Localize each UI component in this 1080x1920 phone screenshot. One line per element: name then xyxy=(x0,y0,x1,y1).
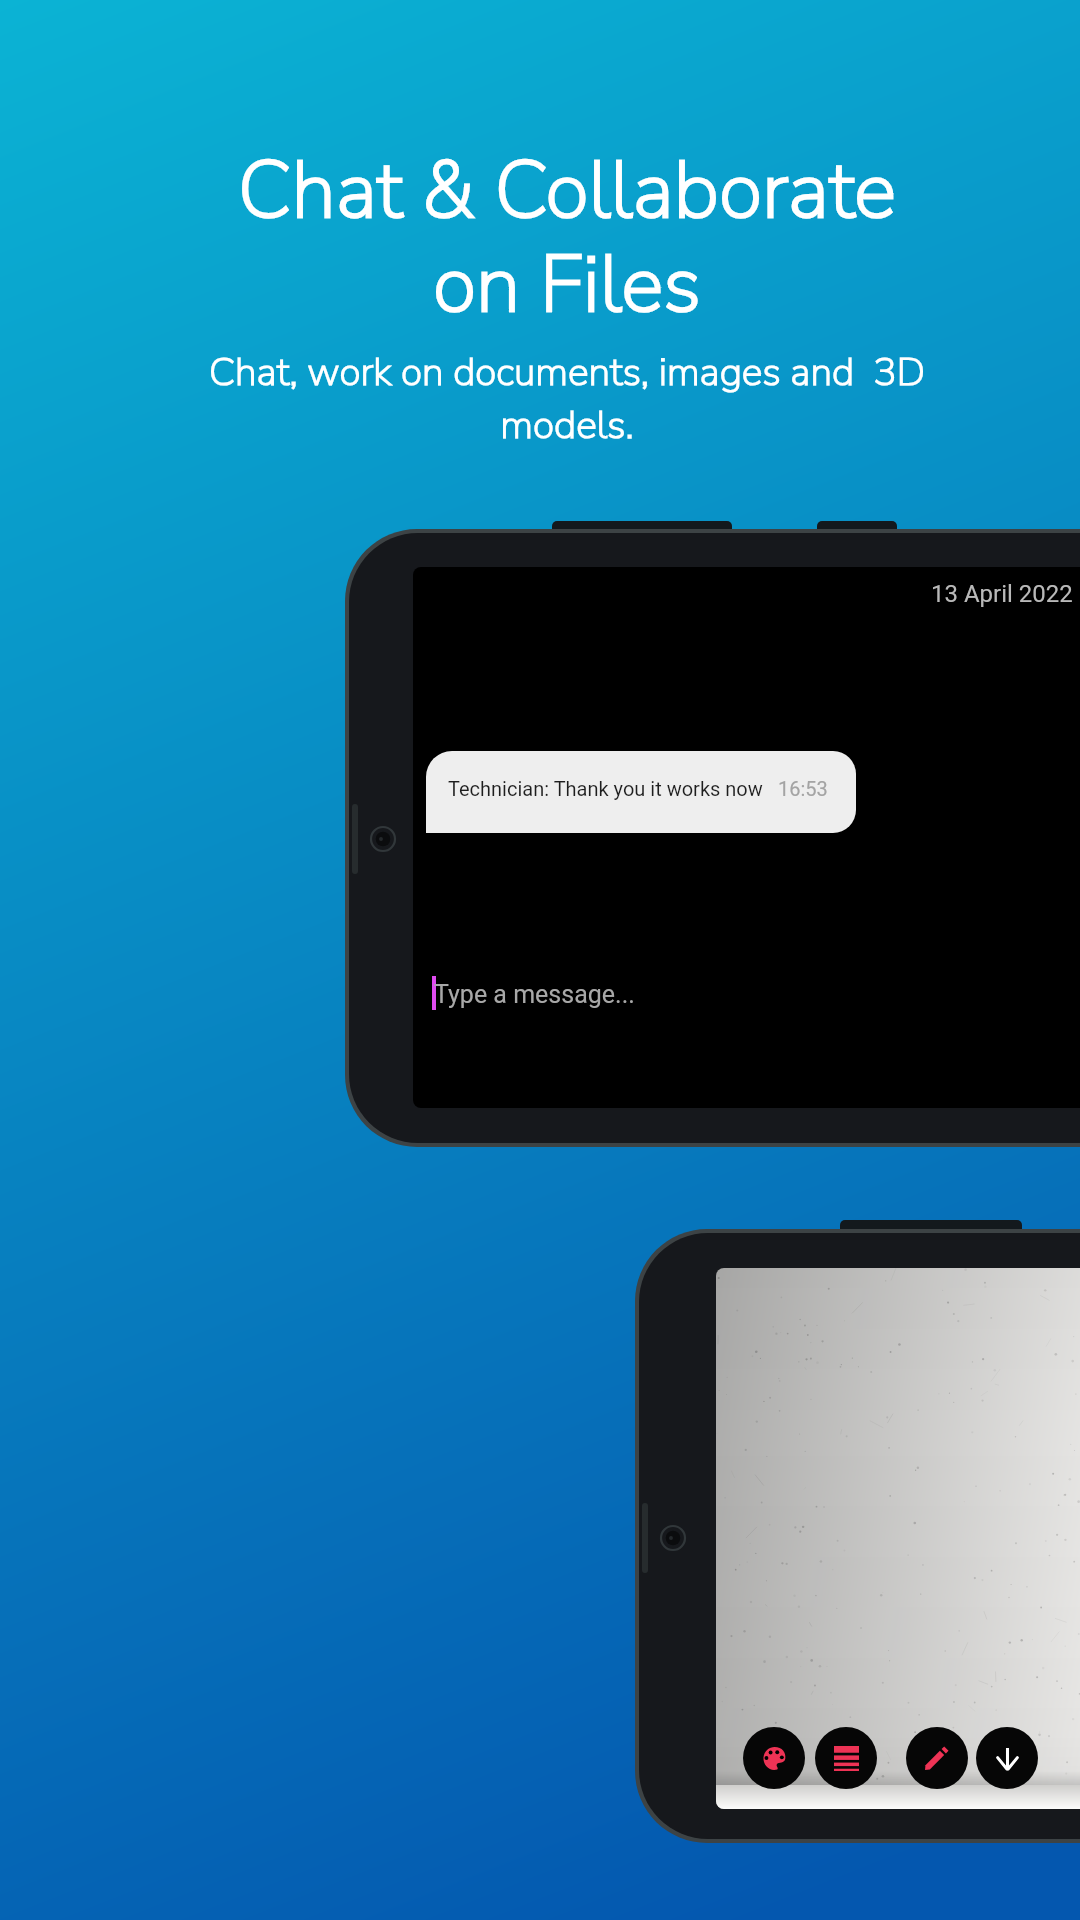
button[interactable]: Draw xyxy=(906,1727,968,1789)
staticText: 13 April 2022 xyxy=(931,580,1073,608)
button[interactable]: Type a message... xyxy=(432,967,1072,1019)
button[interactable]: Technician: Thank you it works now xyxy=(426,751,856,833)
staticText: Chat, work on documents, images and 3D m… xyxy=(27,346,1080,451)
staticText: Chat & Collaborate on Files xyxy=(27,136,1080,339)
button[interactable]: Colour palette xyxy=(743,1727,805,1789)
button[interactable]: Download xyxy=(976,1727,1038,1789)
button[interactable]: Text styles xyxy=(815,1727,877,1789)
staticText: 16:53 xyxy=(778,777,828,800)
staticText: Type a message... xyxy=(434,980,635,1009)
staticText: Technician: Thank you it works now xyxy=(448,777,763,800)
